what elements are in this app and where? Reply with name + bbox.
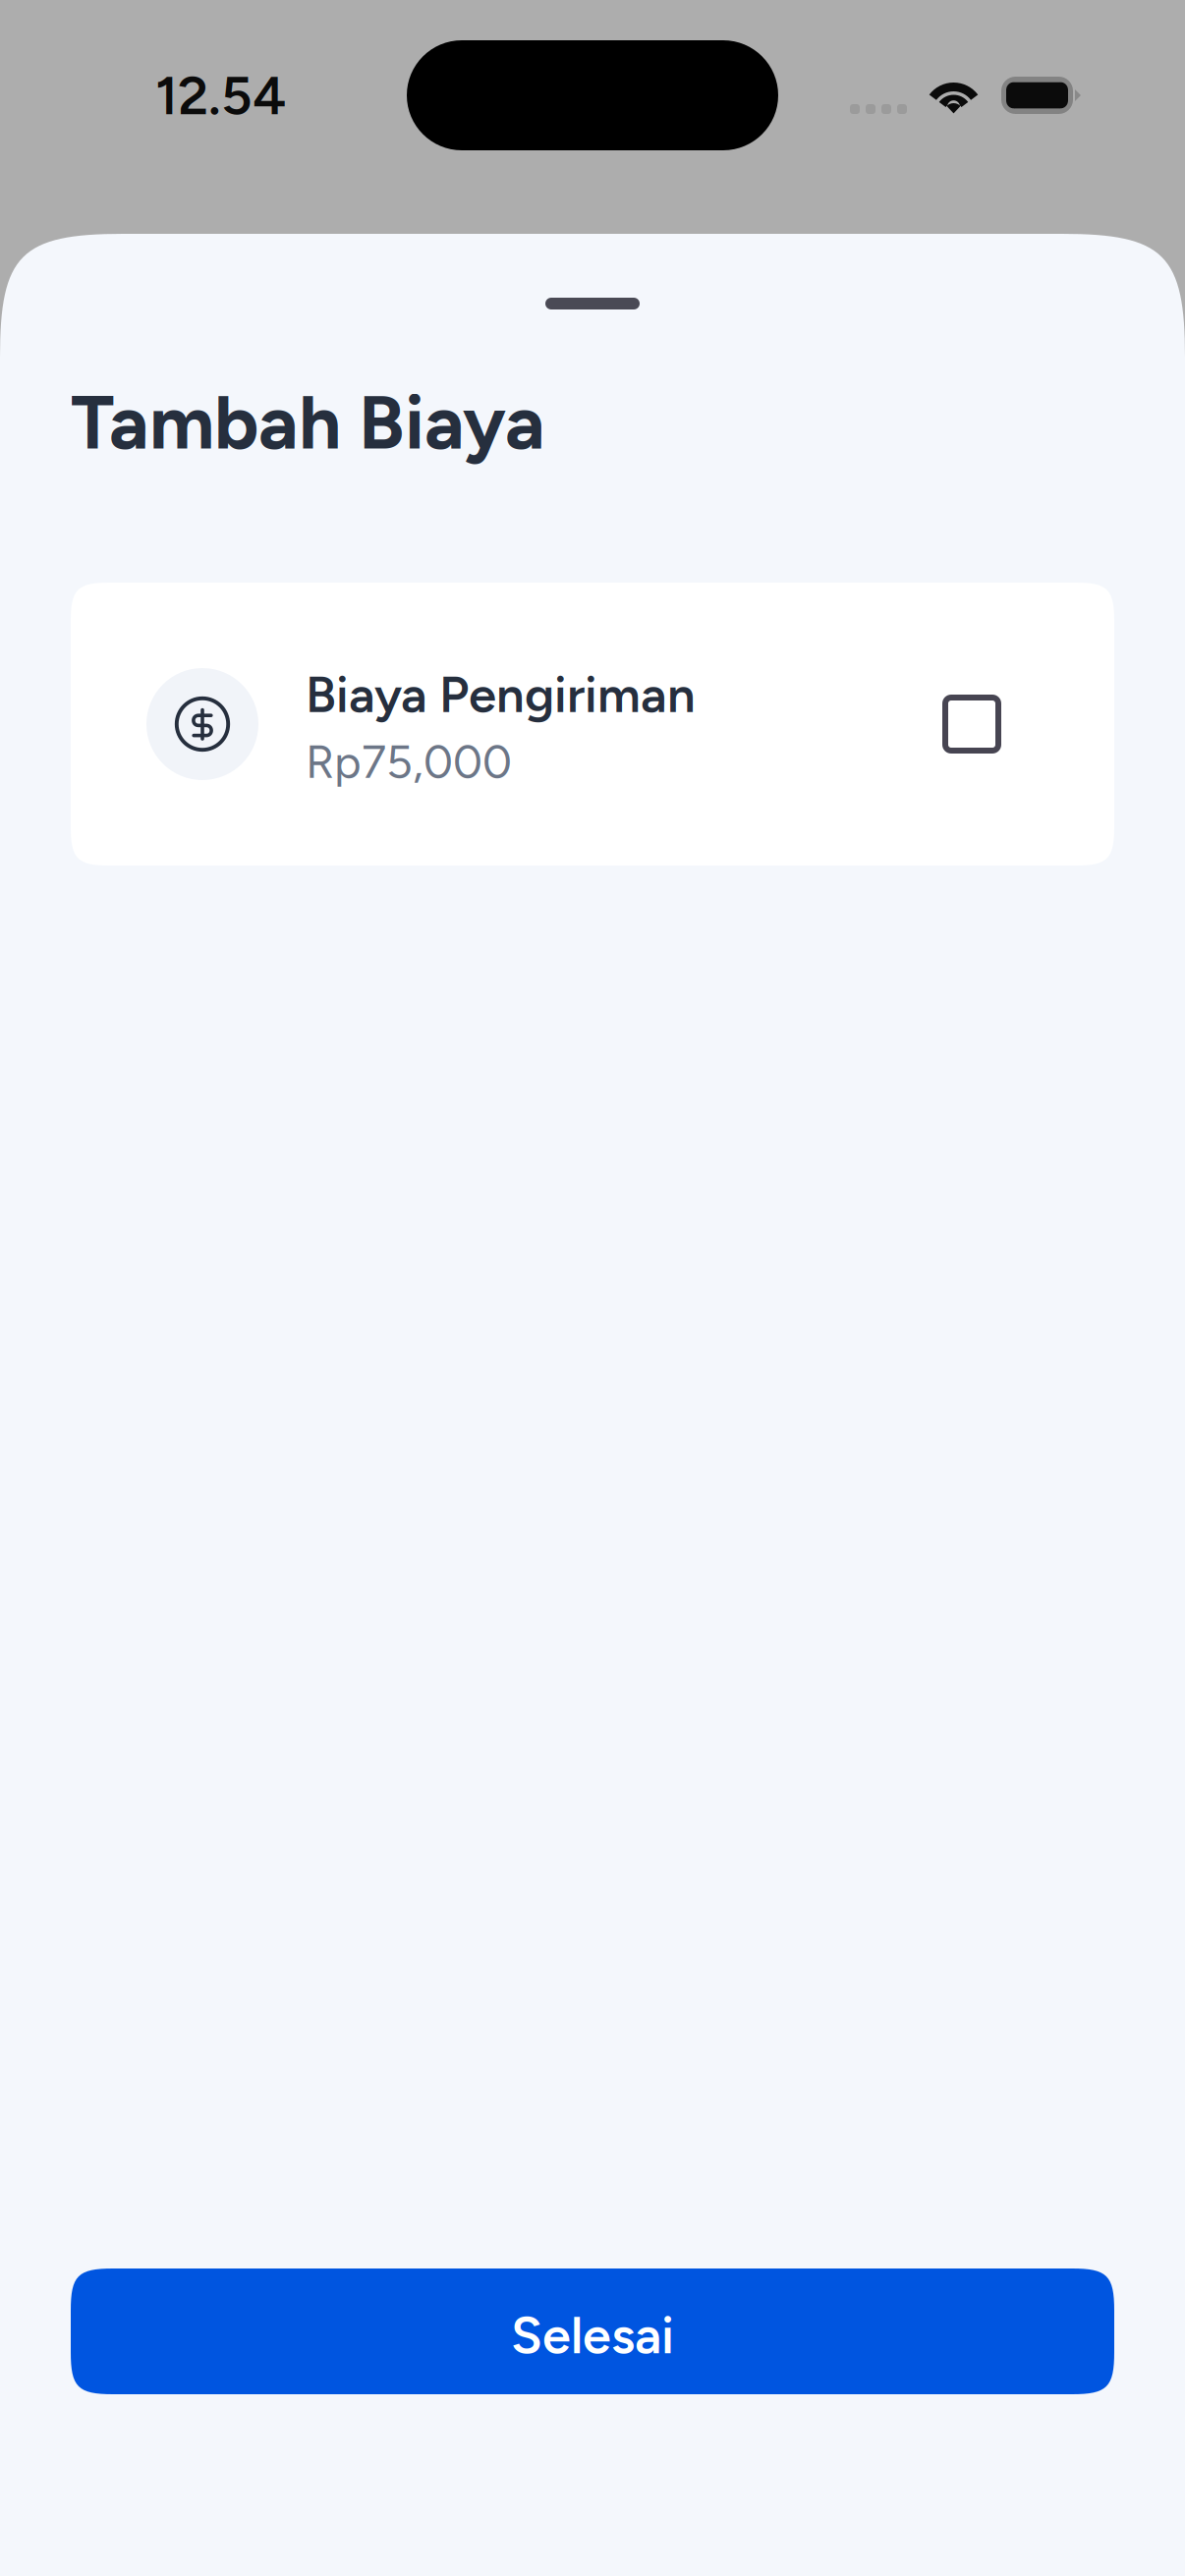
staticText: Selesai (511, 2305, 674, 2366)
button[interactable]: Biaya Pengiriman (71, 583, 1114, 866)
button[interactable]: Selesai (71, 2268, 1114, 2394)
staticText: Tambah Biaya (71, 378, 545, 467)
staticText: Biaya Pengiriman (306, 665, 696, 724)
staticText: Rp75,000 (306, 734, 512, 789)
staticText: 12.54 (155, 63, 286, 128)
